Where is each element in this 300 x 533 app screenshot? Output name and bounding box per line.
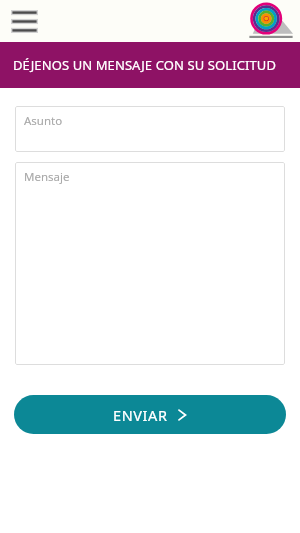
button[interactable]: Asunto xyxy=(15,106,285,152)
staticText: Asunto xyxy=(24,113,63,129)
button[interactable]: La Subbetica home xyxy=(247,1,295,41)
button[interactable]: Open navigation menu xyxy=(8,6,40,36)
staticText: ENVIAR xyxy=(113,405,168,425)
staticText: Mensaje xyxy=(24,169,70,185)
button[interactable]: ENVIAR xyxy=(14,395,286,434)
button[interactable]: Mensaje xyxy=(15,162,285,365)
staticText: DÉJENOS UN MENSAJE CON SU SOLICITUD xyxy=(13,56,276,74)
